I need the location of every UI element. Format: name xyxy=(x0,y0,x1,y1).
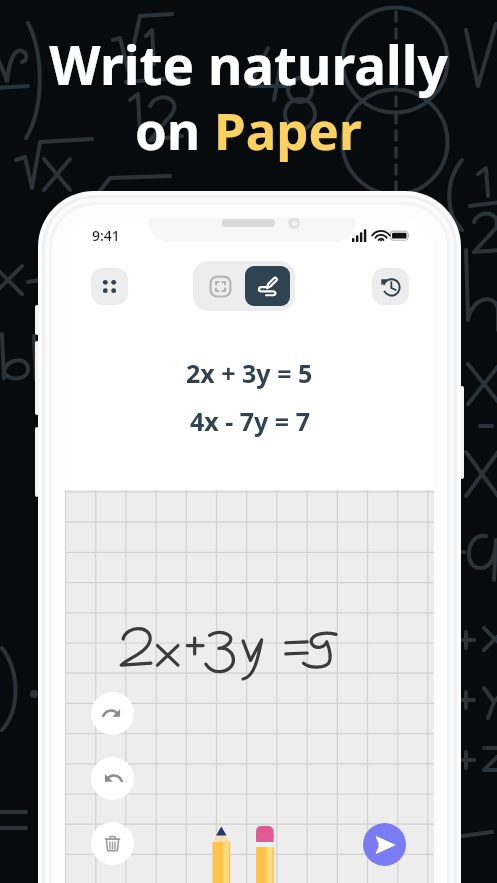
button[interactable]: Menu xyxy=(91,268,128,305)
button[interactable]: Send xyxy=(363,823,406,866)
staticText: Paper xyxy=(214,95,362,164)
staticText: Write naturally xyxy=(49,28,448,100)
staticText: 4x - 7y = 7 xyxy=(190,404,310,438)
button[interactable]: Undo xyxy=(91,757,134,800)
staticText: 9:41 xyxy=(92,226,120,245)
button[interactable]: Redo xyxy=(91,692,134,735)
button[interactable]: Scan xyxy=(198,266,243,306)
button[interactable]: Delete xyxy=(91,822,134,865)
button[interactable]: History xyxy=(372,268,409,305)
button[interactable]: Write xyxy=(245,266,290,306)
staticText: 2x + 3y = 5 xyxy=(186,356,313,390)
staticText: on xyxy=(135,95,214,164)
